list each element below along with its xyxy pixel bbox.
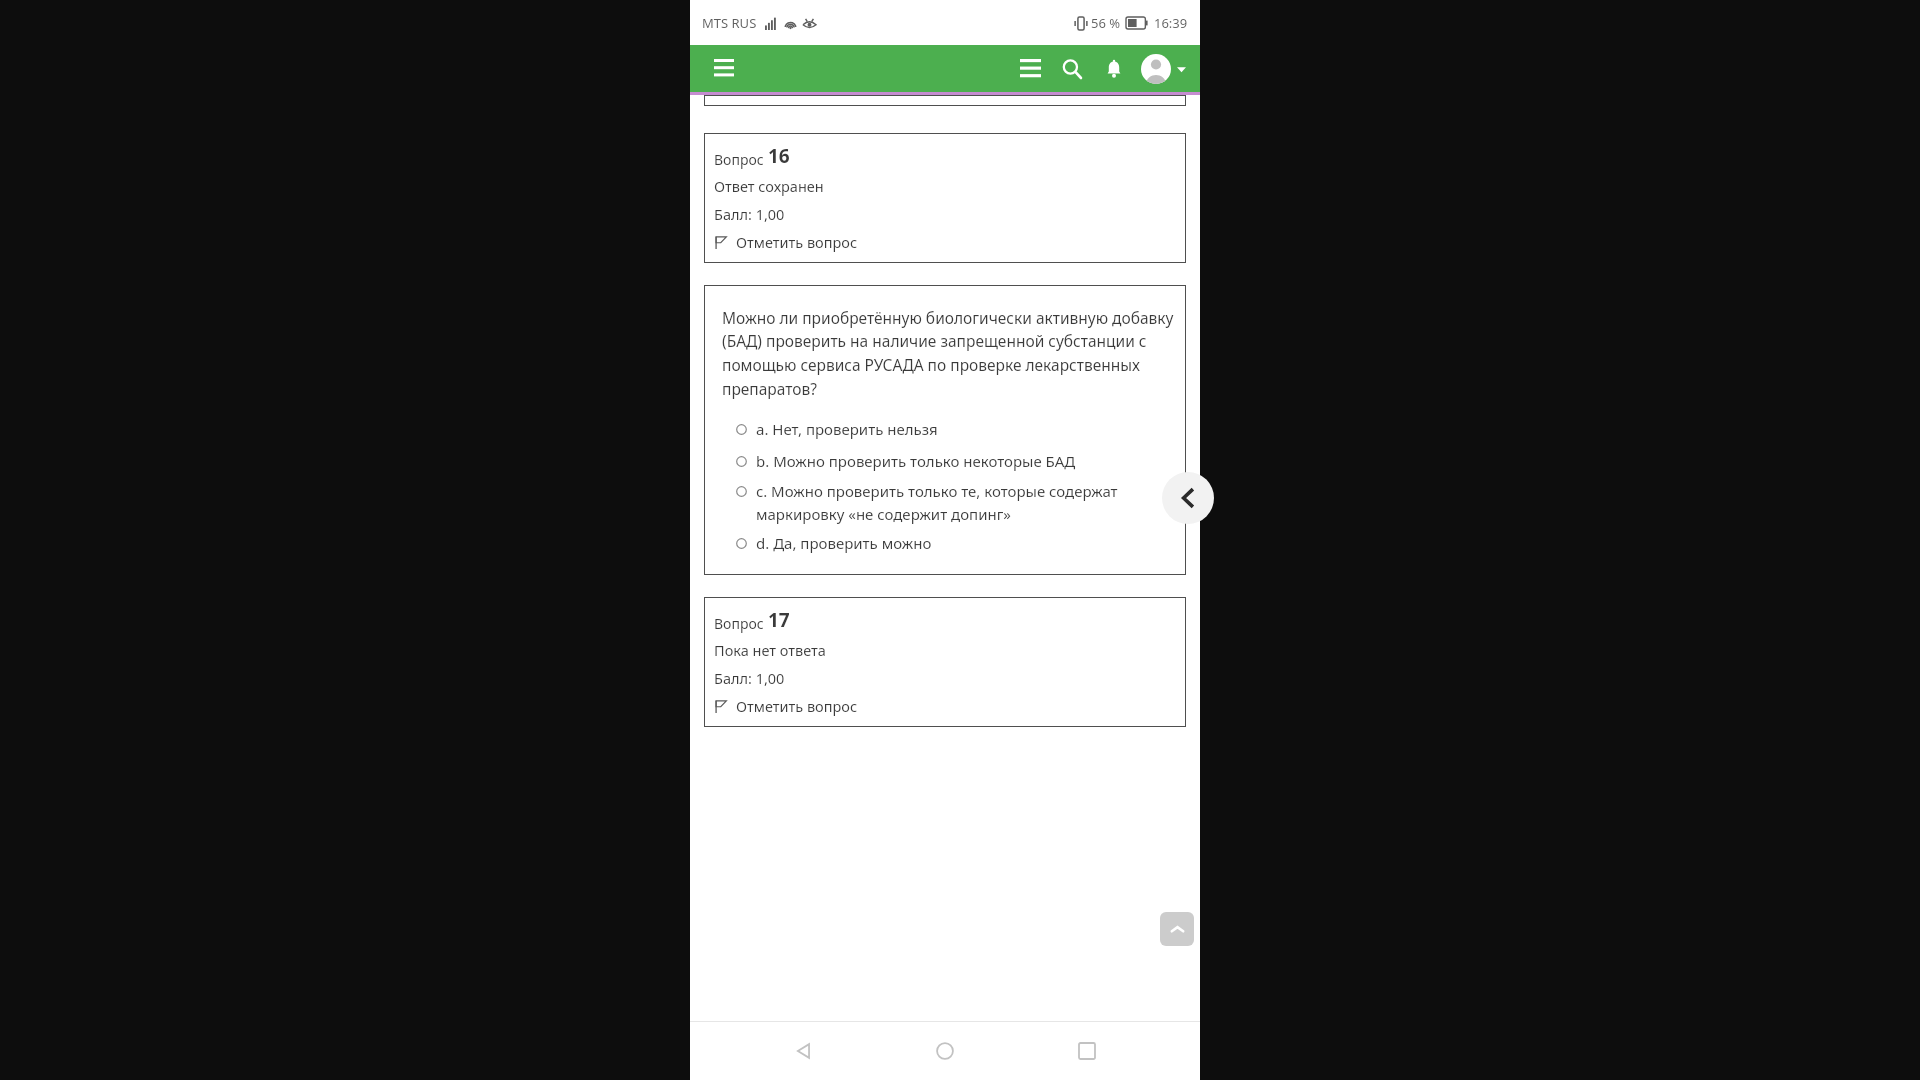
staticText: Вопрос — [714, 150, 768, 169]
button[interactable]: Course menu — [1009, 48, 1051, 90]
button[interactable]: Previous page — [1162, 472, 1214, 524]
button[interactable]: Можно ли приобретённую биологически акти… — [704, 285, 1186, 575]
staticText: Балл: 1,00 — [714, 204, 785, 224]
staticText: 56 % — [1091, 14, 1121, 32]
staticText: Балл: 1,00 — [714, 668, 785, 688]
button[interactable]: Вопрос — [704, 597, 1186, 727]
button[interactable]: Profile — [1139, 54, 1188, 84]
button[interactable]: Menu — [704, 49, 744, 89]
button[interactable]: Back — [776, 1023, 832, 1079]
staticText: 17 — [768, 607, 790, 633]
staticText: b. Можно проверить только некоторые БАД — [756, 451, 1076, 471]
staticText: MTS RUS — [702, 14, 757, 32]
staticText: d. Да, проверить можно — [756, 533, 932, 553]
button[interactable]: d. Да, проверить можно — [722, 533, 1174, 553]
staticText: a. Нет, проверить нельзя — [756, 419, 938, 439]
staticText: 16:39 — [1154, 14, 1188, 32]
button[interactable]: Search — [1051, 48, 1093, 90]
staticText: 16 — [768, 143, 790, 169]
button[interactable]: Scroll to top — [1160, 912, 1194, 946]
button[interactable]: c. Можно проверить только те, которые со… — [722, 481, 1174, 524]
button[interactable]: Вопрос — [704, 133, 1186, 263]
staticText: Вопрос — [714, 614, 768, 633]
staticText: Пока нет ответа — [714, 640, 826, 660]
button[interactable]: b. Можно проверить только некоторые БАД — [722, 451, 1174, 471]
button[interactable]: a. Нет, проверить нельзя — [722, 419, 1174, 439]
staticText: Можно ли приобретённую биологически акти… — [722, 307, 1174, 400]
staticText: Отметить вопрос — [736, 232, 858, 252]
button[interactable]: Notifications — [1093, 48, 1135, 90]
button[interactable]: Отметить вопрос — [714, 696, 858, 716]
staticText: Отметить вопрос — [736, 696, 858, 716]
button[interactable]: Recents — [1059, 1023, 1115, 1079]
staticText: Ответ сохранен — [714, 176, 824, 196]
staticText: c. Можно проверить только те, которые со… — [756, 481, 1168, 524]
button[interactable]: Home — [917, 1023, 973, 1079]
button[interactable]: Отметить вопрос — [714, 232, 858, 252]
